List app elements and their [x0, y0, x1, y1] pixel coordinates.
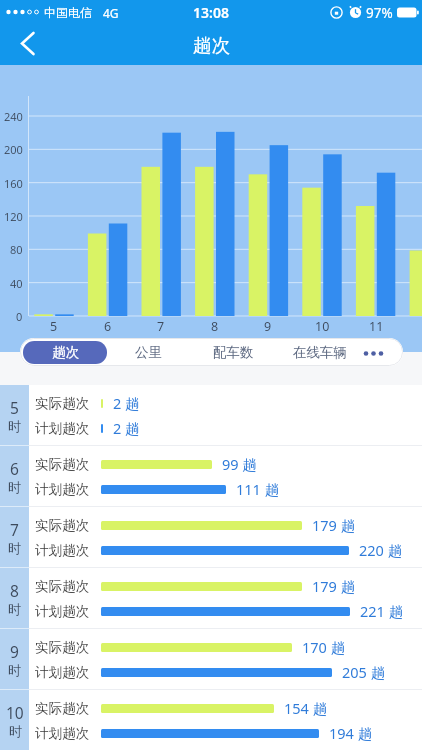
staticText: 时: [8, 601, 21, 617]
staticText: 实际趟次: [35, 517, 89, 534]
staticText: 时: [8, 418, 21, 434]
staticText: 170 趟: [302, 637, 346, 657]
staticText: 中国电信: [44, 5, 92, 20]
staticText: 计划趟次: [35, 725, 89, 742]
staticText: 10: [6, 702, 24, 723]
button[interactable]: [6, 27, 46, 63]
button[interactable]: 配车数: [198, 338, 268, 366]
staticText: 配车数: [213, 344, 254, 361]
staticText: 205 趟: [342, 662, 386, 682]
button[interactable]: 趟次: [23, 341, 107, 364]
staticText: 240: [4, 109, 23, 124]
staticText: 194 趟: [329, 723, 373, 743]
staticText: 7: [10, 519, 19, 540]
button[interactable]: 7: [0, 507, 422, 568]
staticText: 时: [8, 479, 21, 495]
staticText: 111 趟: [236, 479, 280, 499]
staticText: 时: [9, 723, 22, 739]
button[interactable]: 5: [0, 385, 422, 446]
staticText: 8: [10, 580, 19, 601]
staticText: 97%: [366, 4, 393, 22]
staticText: 计划趟次: [35, 664, 89, 681]
staticText: 8: [211, 318, 219, 335]
staticText: 120: [4, 209, 23, 224]
button[interactable]: 6: [0, 446, 422, 507]
staticText: 趟次: [52, 344, 79, 361]
staticText: 计划趟次: [35, 542, 89, 559]
staticText: 200: [4, 142, 23, 157]
staticText: 5: [10, 397, 19, 418]
staticText: 计划趟次: [35, 481, 89, 498]
staticText: 11: [369, 318, 384, 335]
staticText: 6: [104, 318, 112, 335]
staticText: 99 趟: [222, 454, 257, 474]
staticText: 实际趟次: [35, 700, 89, 717]
staticText: 计划趟次: [35, 603, 89, 620]
button[interactable]: 8: [0, 568, 422, 629]
staticText: 13:08: [193, 3, 229, 22]
button[interactable]: 公里: [118, 338, 178, 366]
staticText: 趟次: [193, 34, 230, 57]
staticText: 0: [16, 309, 23, 324]
staticText: 计划趟次: [35, 420, 89, 437]
staticText: 在线车辆: [293, 344, 347, 361]
staticText: 40: [10, 276, 23, 291]
staticText: 9: [10, 641, 19, 662]
staticText: 4G: [103, 5, 119, 21]
staticText: 时: [8, 540, 21, 556]
staticText: 7: [157, 318, 165, 335]
staticText: 实际趟次: [35, 639, 89, 656]
staticText: 6: [10, 458, 19, 479]
staticText: 实际趟次: [35, 578, 89, 595]
button[interactable]: [356, 338, 398, 366]
staticText: 2 趟: [113, 418, 140, 438]
staticText: 154 趟: [284, 698, 328, 718]
staticText: 220 趟: [359, 540, 403, 560]
staticText: 实际趟次: [35, 456, 89, 473]
button[interactable]: 10: [0, 690, 422, 750]
staticText: 179 趟: [312, 576, 356, 596]
staticText: 221 趟: [360, 601, 404, 621]
staticText: 9: [264, 318, 272, 335]
staticText: 公里: [135, 344, 162, 361]
staticText: 160: [4, 176, 23, 191]
staticText: 80: [10, 242, 23, 257]
button[interactable]: 在线车辆: [280, 338, 360, 366]
staticText: 5: [50, 318, 58, 335]
staticText: 10: [315, 318, 330, 335]
staticText: 时: [8, 662, 21, 678]
staticText: 2 趟: [113, 393, 140, 413]
button[interactable]: 9: [0, 629, 422, 690]
staticText: 实际趟次: [35, 395, 89, 412]
staticText: 179 趟: [312, 515, 356, 535]
